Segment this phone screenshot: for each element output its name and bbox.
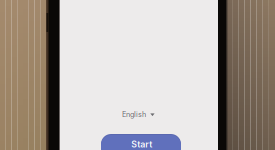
staticText: English (122, 110, 146, 119)
button[interactable]: English (119, 107, 158, 122)
staticText: Start (131, 139, 152, 150)
button[interactable]: Start (101, 134, 181, 150)
